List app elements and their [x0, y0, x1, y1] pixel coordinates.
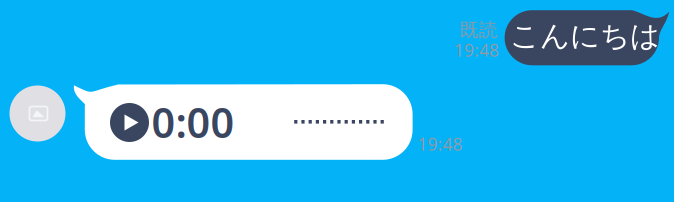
- staticText: 19:48: [417, 132, 462, 155]
- button[interactable]: 0:00: [0, 0, 674, 202]
- button[interactable]: こんにちは: [0, 0, 674, 202]
- button[interactable]: Profile photo: [0, 0, 674, 202]
- staticText: 19:48: [454, 38, 499, 61]
- staticText: 0:00: [151, 95, 234, 149]
- staticText: こんにちは: [510, 18, 660, 54]
- staticText: 既読: [460, 18, 498, 41]
